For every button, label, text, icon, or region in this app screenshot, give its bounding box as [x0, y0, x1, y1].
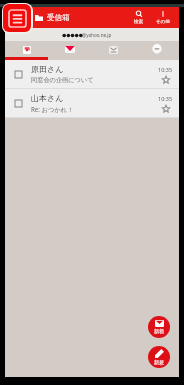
staticText: 新着	[154, 328, 164, 334]
button[interactable]: Tab 3	[91, 41, 135, 60]
button[interactable]: New mail	[148, 316, 170, 338]
button[interactable]: Tab 1	[5, 41, 48, 60]
staticText: 山本さん	[31, 93, 64, 103]
staticText: 検索	[134, 19, 143, 25]
button[interactable]: Search	[132, 10, 145, 25]
staticText: Re: おつかれ！	[31, 105, 74, 113]
staticText: 受信箱	[47, 13, 70, 22]
button[interactable]: 受信箱	[35, 13, 70, 22]
staticText: @yahoo.ne.jp	[82, 32, 112, 38]
button[interactable]: More options	[154, 10, 172, 25]
button[interactable]: Compose	[148, 346, 170, 368]
button[interactable]: Tab 4	[135, 41, 179, 60]
staticText: 10:35	[158, 66, 173, 73]
button[interactable]: Tab 2	[48, 41, 91, 60]
button[interactable]: 原田さん	[5, 60, 179, 88]
button[interactable]: 山本さん	[5, 89, 179, 117]
staticText: 新規	[154, 359, 164, 365]
staticText: 同窓会の企画について	[31, 76, 94, 84]
staticText: その他	[156, 19, 170, 25]
staticText: 原田さん	[31, 64, 64, 74]
button[interactable]: Menu	[3, 4, 31, 32]
staticText: 10:35	[158, 95, 173, 102]
